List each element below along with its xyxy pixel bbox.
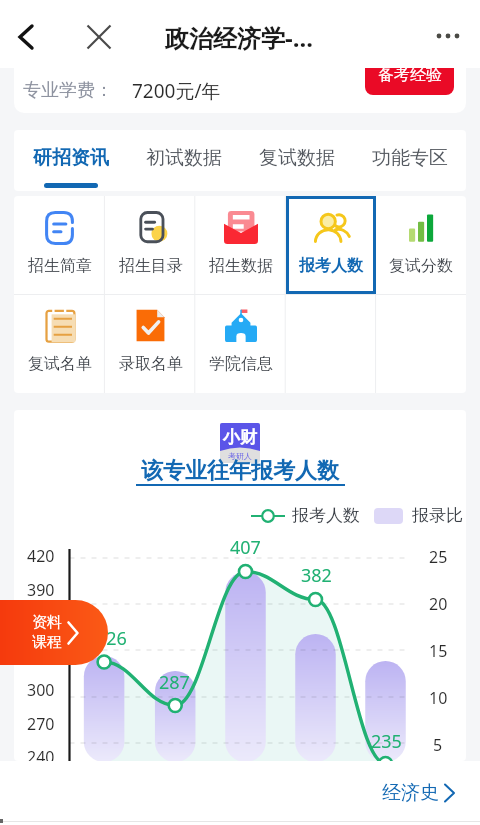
button[interactable]: 复试数据: [240, 130, 353, 191]
staticText: 该专业往年报考人数: [141, 457, 339, 485]
button[interactable]: 报考人数: [286, 196, 376, 294]
button[interactable]: Back: [6, 17, 46, 57]
staticText: 考研人: [228, 451, 252, 461]
button[interactable]: Close: [79, 17, 119, 57]
staticText: 招生数据: [209, 256, 273, 276]
button[interactable]: 初试数据: [127, 130, 240, 191]
staticText: 招生简章: [28, 256, 92, 276]
staticText: 25: [429, 546, 448, 568]
button[interactable]: 备考经验: [365, 68, 454, 95]
staticText: 7200元/年: [132, 78, 221, 104]
button[interactable]: 招生数据: [196, 196, 286, 294]
staticText: 326: [96, 626, 127, 651]
staticText: 235: [371, 729, 402, 754]
button[interactable]: 录取名单: [105, 294, 196, 393]
button[interactable]: 招生简章: [14, 196, 105, 294]
staticText: 小财: [223, 427, 257, 448]
staticText: 240: [27, 746, 55, 761]
staticText: 390: [27, 579, 55, 601]
button[interactable]: 学院信息: [196, 294, 286, 393]
button[interactable]: More options: [426, 14, 470, 58]
staticText: 录取名单: [119, 354, 183, 374]
staticText: 招生目录: [119, 256, 183, 276]
button[interactable]: 经济史: [382, 781, 455, 805]
staticText: 20: [429, 593, 448, 615]
staticText: 复试数据: [259, 146, 335, 170]
button[interactable]: 资料: [0, 600, 108, 665]
button[interactable]: 研招资讯: [14, 130, 127, 191]
staticText: 课程: [32, 633, 62, 652]
staticText: 复试名单: [28, 354, 92, 374]
staticText: 功能专区: [372, 146, 448, 170]
staticText: 备考经验: [378, 68, 442, 85]
staticText: 287: [159, 670, 190, 695]
staticText: 382: [301, 563, 332, 588]
button[interactable]: 复试分数: [376, 196, 466, 294]
staticText: 420: [27, 545, 55, 567]
staticText: 研招资讯: [33, 146, 109, 170]
staticText: 学院信息: [209, 354, 273, 374]
staticText: 报考人数: [299, 256, 363, 276]
staticText: 270: [27, 713, 55, 735]
staticText: 407: [230, 535, 261, 560]
button[interactable]: 复试名单: [14, 294, 105, 393]
staticText: 报录比: [412, 505, 463, 526]
staticText: 5: [433, 734, 443, 756]
staticText: 初试数据: [146, 146, 222, 170]
staticText: 专业学费：: [23, 79, 113, 102]
button[interactable]: 招生目录: [105, 196, 196, 294]
staticText: 复试分数: [389, 256, 453, 276]
button[interactable]: 功能专区: [353, 130, 466, 191]
staticText: 政治经济学-...: [165, 21, 313, 54]
staticText: 300: [27, 679, 55, 701]
staticText: 15: [429, 640, 448, 662]
staticText: 经济史: [382, 781, 439, 805]
staticText: 报考人数: [292, 505, 360, 526]
staticText: 资料: [32, 613, 62, 632]
staticText: 10: [429, 687, 448, 709]
